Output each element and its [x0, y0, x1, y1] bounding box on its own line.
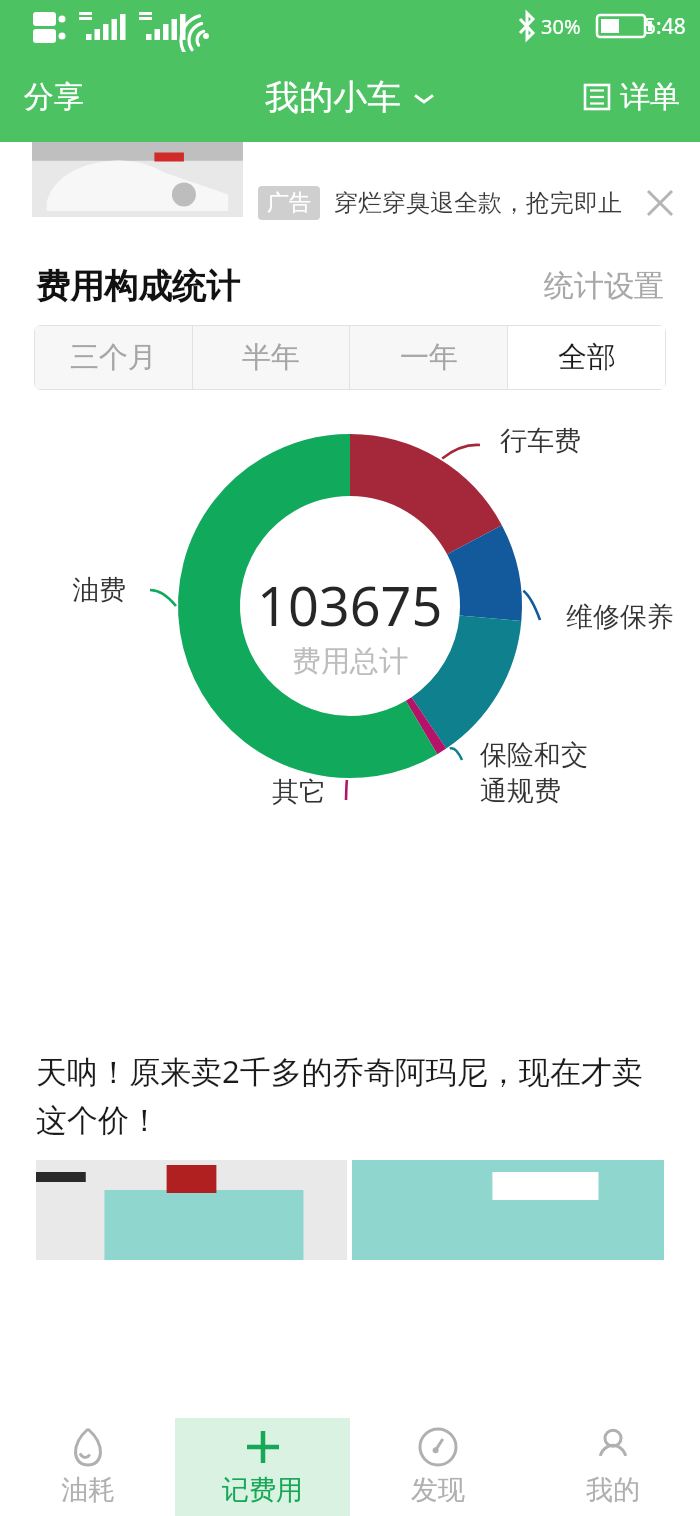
staticText: 油费: [72, 573, 126, 607]
staticText: 发现: [411, 1473, 465, 1507]
staticText: 全部: [558, 339, 616, 376]
button[interactable]: 统计设置: [508, 259, 700, 313]
staticText: 三个月: [70, 339, 157, 376]
staticText: 5:48: [644, 12, 686, 41]
staticText: 30%: [541, 13, 581, 40]
staticText: 详单: [620, 78, 680, 116]
button[interactable]: 半年: [193, 326, 349, 389]
staticText: 记费用: [222, 1473, 303, 1507]
staticText: 半年: [242, 339, 300, 376]
staticText: 我的: [586, 1473, 640, 1507]
button[interactable]: 我的小车: [253, 66, 447, 129]
staticText: 行车费: [500, 424, 581, 458]
staticText: 费用总计: [292, 643, 408, 680]
staticText: 广告: [267, 189, 311, 217]
button[interactable]: 天呐！原来卖2千多的乔奇阿玛尼，现在才卖这个价！: [0, 1050, 700, 1260]
staticText: 一年: [400, 339, 458, 376]
button[interactable]: 详单: [564, 66, 700, 128]
staticText: 103675: [257, 568, 443, 642]
staticText: 其它: [272, 775, 326, 809]
staticText: 穿烂穿臭退全款，抢完即止: [334, 188, 622, 218]
staticText: 统计设置: [544, 267, 664, 305]
button[interactable]: 记费用: [175, 1418, 350, 1516]
staticText: 保险和交 通规费: [480, 738, 588, 808]
button[interactable]: 广告: [0, 142, 700, 247]
button[interactable]: 发现: [350, 1418, 525, 1516]
staticText: 维修保养: [566, 600, 674, 634]
staticText: 油耗: [61, 1473, 115, 1507]
button[interactable]: 分享: [0, 64, 108, 130]
staticText: 天呐！原来卖2千多的乔奇阿玛尼，现在才卖这个价！: [36, 1050, 664, 1140]
button[interactable]: 三个月: [35, 326, 192, 389]
button[interactable]: 我的: [525, 1418, 700, 1516]
button[interactable]: Close ad: [638, 181, 682, 225]
button[interactable]: 油耗: [0, 1418, 175, 1516]
staticText: 分享: [24, 78, 84, 116]
button[interactable]: 全部: [508, 326, 665, 389]
button[interactable]: 一年: [350, 326, 507, 389]
staticText: 我的小车: [265, 76, 401, 119]
staticText: 费用构成统计: [36, 265, 240, 308]
